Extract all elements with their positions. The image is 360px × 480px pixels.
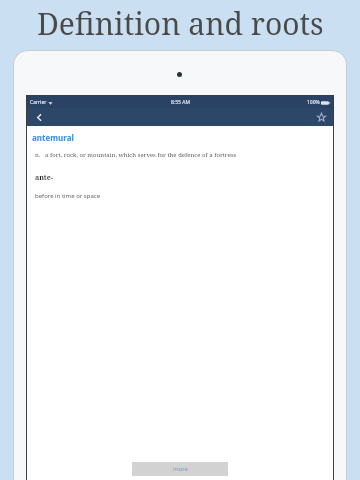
staticText: ante- <box>35 173 53 183</box>
staticText: 100% <box>307 99 320 106</box>
staticText: more <box>173 465 188 473</box>
staticText: Carrier <box>30 99 47 106</box>
button[interactable]: antemural <box>32 132 74 143</box>
button[interactable]: Back <box>27 108 51 126</box>
button[interactable]: Favourite <box>309 108 333 126</box>
staticText: before in time or space <box>35 192 101 200</box>
button[interactable]: more <box>132 462 228 476</box>
staticText: 8:55 AM <box>171 99 190 106</box>
staticText: n. a fort, rock, or mountain, which serv… <box>35 151 237 159</box>
staticText: Definition and roots <box>37 3 324 44</box>
